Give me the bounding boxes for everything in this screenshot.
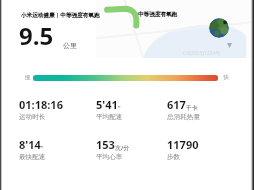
staticText: 快: [223, 74, 229, 81]
staticText: 9.5: [19, 19, 54, 52]
staticText: 小米运动健康 | 中等强度有氧跑: [21, 11, 100, 19]
staticText: 8'14: [19, 137, 41, 152]
button[interactable]: 11790: [167, 137, 237, 161]
button[interactable]: 153: [96, 137, 167, 161]
staticText: 运动时长: [19, 113, 46, 121]
staticText: 11790: [167, 137, 199, 152]
staticText: 平均心率: [96, 153, 123, 161]
staticText: 01:18:16: [19, 97, 63, 112]
staticText: ": [41, 144, 44, 152]
staticText: 153: [96, 137, 115, 152]
staticText: 617: [167, 97, 186, 112]
button[interactable]: 5'41: [96, 97, 167, 121]
staticText: 公里: [63, 41, 77, 50]
staticText: 次/分: [115, 144, 130, 152]
staticText: ": [118, 104, 121, 112]
button[interactable]: 617: [167, 97, 237, 121]
staticText: 最快配速: [19, 153, 46, 161]
button[interactable]: 01:18:16: [19, 97, 96, 121]
staticText: 总消耗热量: [167, 113, 200, 121]
staticText: 千卡: [186, 104, 198, 112]
staticText: 平均配速: [96, 113, 123, 121]
staticText: 慢: [25, 74, 31, 81]
staticText: GS(2023)1234号: [183, 50, 221, 57]
button[interactable]: 8'14: [19, 137, 96, 161]
staticText: 5'41: [96, 97, 118, 112]
staticText: 步数: [167, 153, 181, 161]
staticText: 中等强度有氧跑: [138, 11, 178, 18]
button[interactable]: Map: [209, 18, 229, 38]
